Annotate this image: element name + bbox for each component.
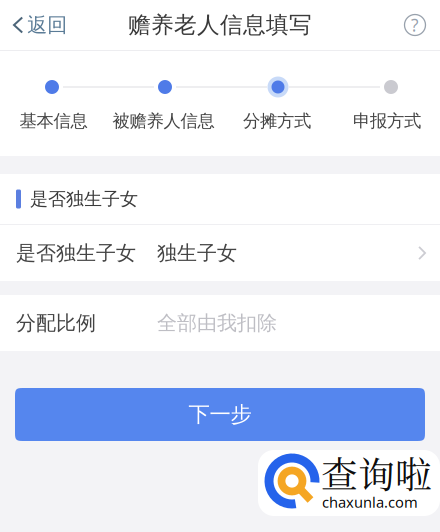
button[interactable]: 是否独生子女: [0, 225, 440, 281]
staticText: 全部由我扣除: [157, 310, 277, 336]
staticText: 分摊方式: [243, 110, 311, 132]
staticText: 赡养老人信息填写: [128, 11, 312, 39]
staticText: 被赡养人信息: [112, 110, 214, 132]
staticText: 分配比例: [16, 310, 96, 336]
staticText: 是否独生子女: [16, 240, 136, 266]
staticText: 独生子女: [157, 240, 237, 266]
staticText: 返回: [27, 12, 67, 38]
button[interactable]: 下一步: [15, 388, 425, 441]
staticText: 下一步: [188, 401, 251, 428]
staticText: 查询啦: [321, 446, 432, 499]
button[interactable]: 分配比例: [0, 295, 440, 351]
staticText: 申报方式: [353, 110, 421, 132]
button[interactable]: Help: [390, 0, 440, 50]
button[interactable]: 返回: [0, 0, 79, 50]
staticText: 是否独生子女: [30, 188, 138, 210]
staticText: 基本信息: [19, 110, 87, 132]
staticText: chaxunla.com: [322, 492, 418, 512]
staticText: ?: [411, 13, 419, 37]
